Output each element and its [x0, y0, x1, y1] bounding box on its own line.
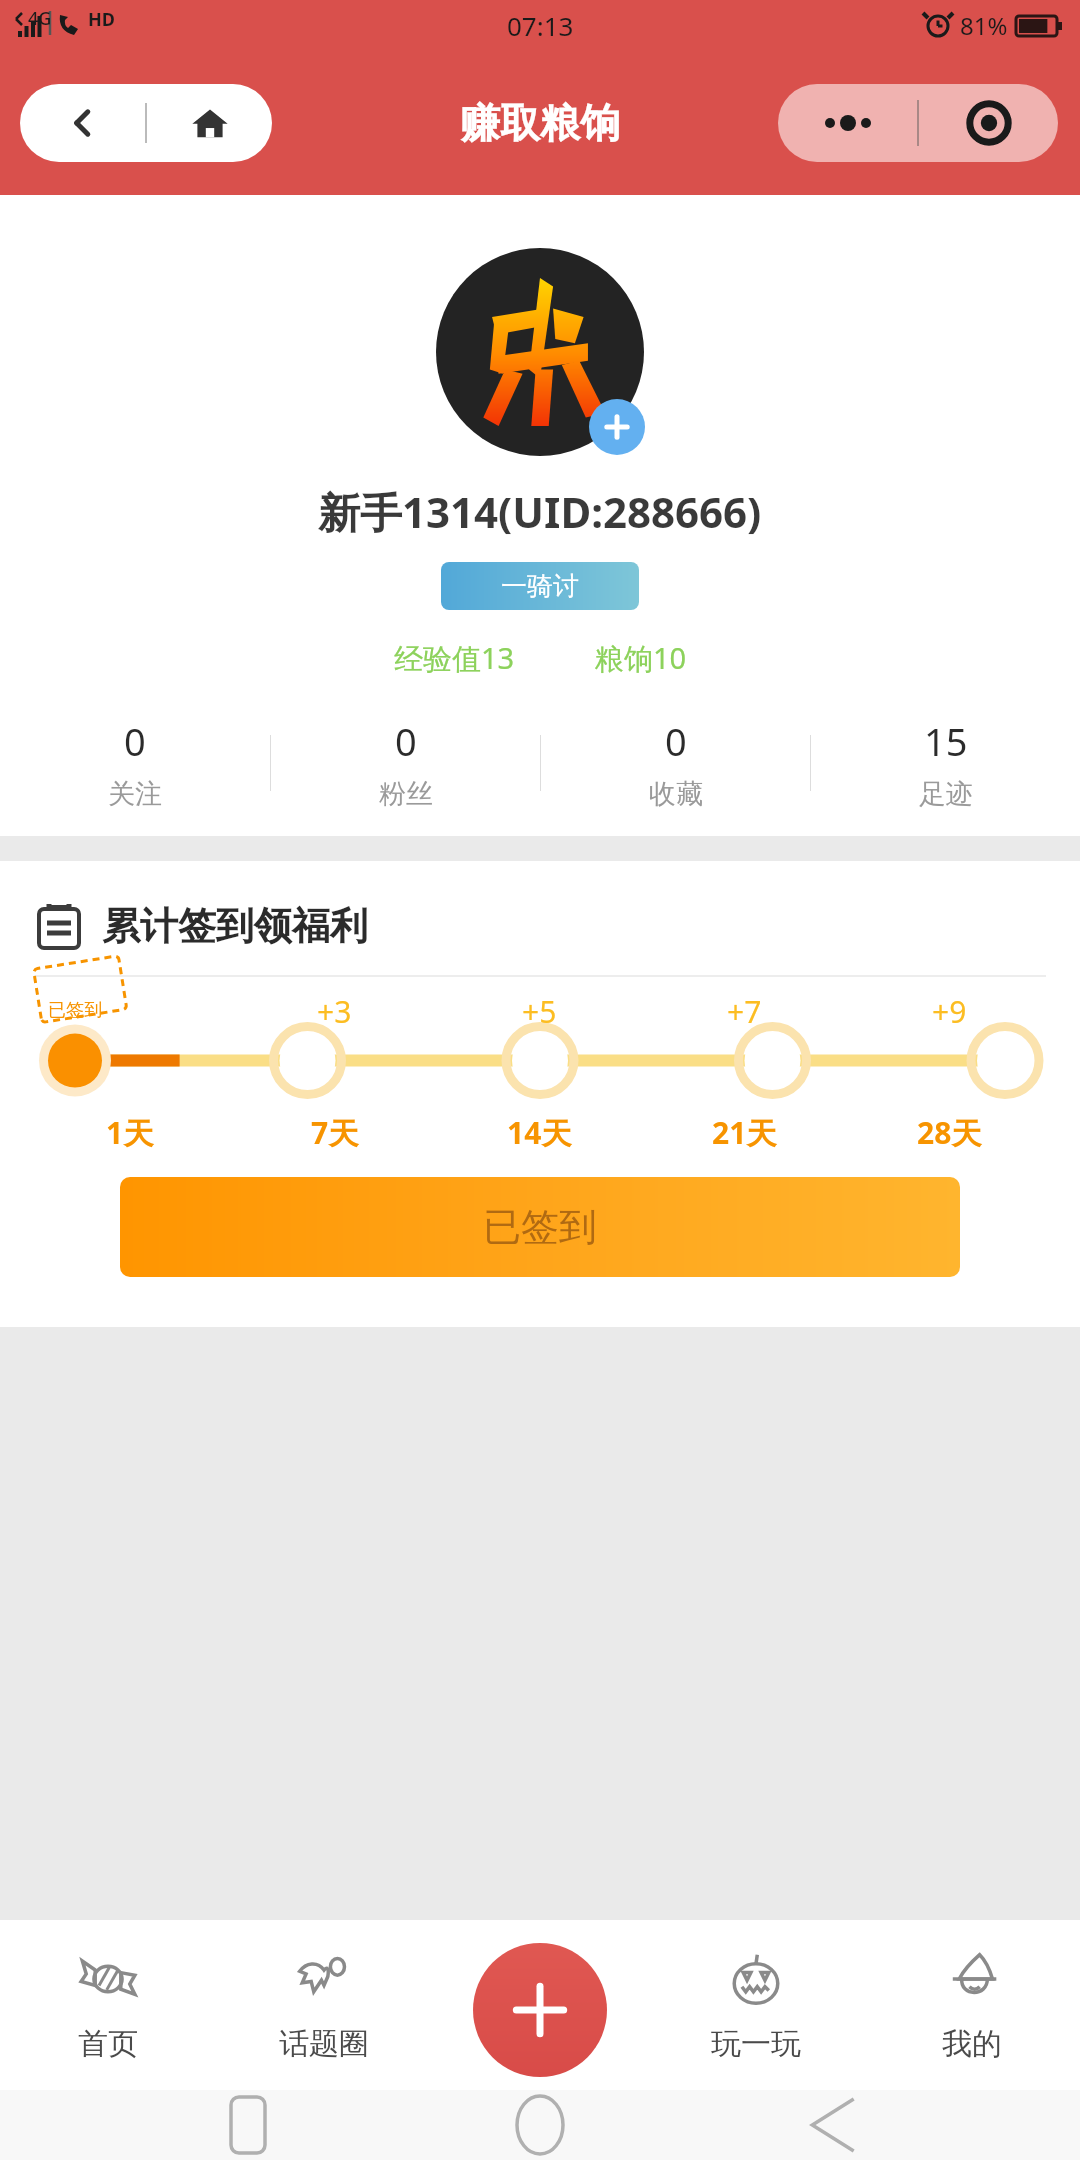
- button[interactable]: 0: [271, 708, 540, 818]
- staticText: 首页: [78, 2025, 138, 2063]
- button[interactable]: [431, 243, 649, 461]
- button[interactable]: Back: [788, 2090, 878, 2160]
- button[interactable]: More options: [778, 84, 917, 162]
- staticText: 足迹: [919, 777, 973, 811]
- staticText: 关注: [108, 777, 162, 811]
- staticText: 0: [665, 715, 687, 767]
- staticText: 81%: [960, 9, 1008, 42]
- staticText: 新手1314(UID:288666): [318, 483, 762, 540]
- button[interactable]: 我的: [864, 1920, 1080, 2090]
- staticText: 15: [924, 715, 968, 767]
- other: Home: [147, 84, 272, 162]
- button[interactable]: 话题圈: [216, 1920, 432, 2090]
- button[interactable]: Back: [20, 84, 272, 162]
- staticText: 粮饷10: [595, 638, 687, 678]
- button[interactable]: 首页: [0, 1920, 216, 2090]
- staticText: 28天: [917, 1112, 982, 1153]
- button[interactable]: 0: [0, 708, 270, 818]
- staticText: 经验值13: [394, 638, 515, 678]
- staticText: 21天: [712, 1112, 777, 1153]
- staticText: 发布: [510, 2022, 570, 2060]
- button[interactable]: 玩一玩: [648, 1920, 864, 2090]
- staticText: 7天: [311, 1112, 359, 1153]
- button[interactable]: Add: [589, 399, 645, 455]
- staticText: 07:13: [507, 8, 574, 43]
- staticText: +5: [522, 991, 557, 1032]
- other: Back: [20, 84, 145, 162]
- button[interactable]: 15: [811, 708, 1080, 818]
- staticText: +3: [317, 991, 352, 1032]
- staticText: 粉丝: [379, 777, 433, 811]
- button[interactable]: Recents: [203, 2090, 293, 2160]
- button[interactable]: 发布: [473, 1943, 607, 2077]
- staticText: 1天: [106, 1112, 154, 1153]
- staticText: 一骑讨: [501, 570, 579, 603]
- staticText: 已签到: [483, 1203, 597, 1251]
- button[interactable]: Close: [919, 84, 1058, 162]
- staticText: 收藏: [649, 777, 703, 811]
- staticText: 14天: [507, 1112, 572, 1153]
- staticText: 累计签到领福利: [102, 902, 368, 950]
- button[interactable]: 已签到: [120, 1177, 960, 1277]
- staticText: 话题圈: [279, 2025, 369, 2063]
- staticText: 我的: [942, 2025, 1002, 2063]
- button[interactable]: Home: [495, 2090, 585, 2160]
- staticText: 已签到: [48, 999, 102, 1022]
- staticText: 4G: [28, 6, 52, 31]
- staticText: 玩一玩: [711, 2025, 801, 2063]
- staticText: 0: [395, 715, 417, 767]
- staticText: 赚取粮饷: [460, 98, 620, 148]
- button[interactable]: 一骑讨: [441, 562, 639, 610]
- staticText: 0: [124, 715, 146, 767]
- staticText: +9: [932, 991, 967, 1032]
- staticText: +7: [727, 991, 762, 1032]
- staticText: HD: [88, 7, 115, 32]
- button[interactable]: 0: [541, 708, 810, 818]
- button[interactable]: 发布: [432, 1920, 648, 2090]
